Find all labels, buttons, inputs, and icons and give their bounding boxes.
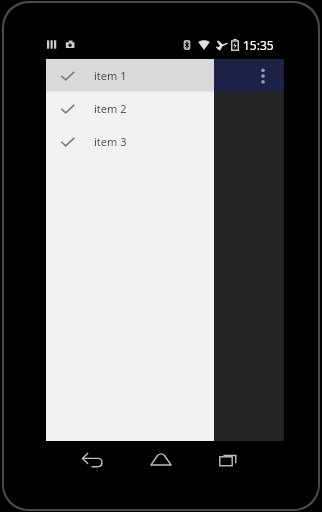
button[interactable]: item 2	[46, 92, 214, 125]
button[interactable]: item 3	[46, 125, 214, 158]
staticText: 15:35	[243, 37, 274, 53]
staticText: item 2	[94, 101, 127, 116]
button[interactable]: Back	[70, 443, 116, 477]
staticText: item 3	[94, 134, 127, 149]
button[interactable]: More options	[250, 59, 276, 92]
button[interactable]: Home	[138, 443, 184, 477]
staticText: item 1	[94, 68, 127, 83]
button[interactable]: Recent apps	[206, 443, 252, 477]
button[interactable]: item 1	[46, 59, 214, 92]
